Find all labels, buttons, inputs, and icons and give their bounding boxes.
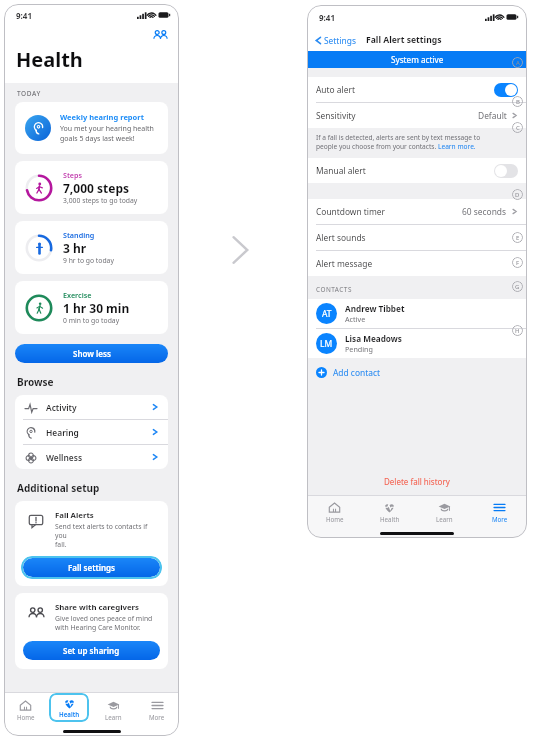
staticText: If a fall is detected, alerts are sent b… bbox=[316, 133, 481, 142]
staticText: TODAY bbox=[17, 89, 41, 98]
button[interactable]: More bbox=[135, 693, 179, 726]
staticText: Health bbox=[380, 515, 400, 523]
button[interactable]: Alert sounds bbox=[307, 225, 527, 250]
staticText: Auto alert bbox=[316, 84, 355, 95]
staticText: Share with caregivers bbox=[55, 602, 139, 613]
button[interactable]: Standing bbox=[15, 221, 168, 274]
button[interactable]: Fall settings bbox=[23, 558, 160, 577]
staticText: G bbox=[515, 283, 520, 291]
button[interactable]: System active bbox=[307, 51, 527, 68]
button[interactable]: Health bbox=[362, 496, 417, 528]
staticText: Learn bbox=[436, 515, 453, 523]
staticText: Alert sounds bbox=[316, 232, 366, 243]
button[interactable]: Steps bbox=[15, 161, 168, 214]
button[interactable]: Activity bbox=[15, 395, 168, 419]
button[interactable]: Countdown timer bbox=[307, 199, 527, 224]
staticText: Default bbox=[478, 110, 507, 121]
staticText: E bbox=[516, 234, 520, 242]
staticText: H bbox=[515, 327, 520, 335]
staticText: 7,000 steps bbox=[63, 180, 130, 196]
button[interactable]: Sensitivity bbox=[307, 103, 527, 128]
button[interactable]: On bbox=[494, 83, 518, 97]
staticText: 60 seconds bbox=[462, 206, 507, 217]
staticText: Give loved ones peace of mind with Heari… bbox=[55, 614, 153, 632]
staticText: Alert message bbox=[316, 258, 373, 269]
button[interactable]: Show less bbox=[15, 344, 168, 363]
staticText: 9:41 bbox=[319, 12, 335, 23]
staticText: LM bbox=[320, 338, 333, 350]
staticText: More bbox=[149, 713, 165, 721]
staticText: Weekly hearing report bbox=[60, 112, 144, 122]
staticText: Andrew Tibbet bbox=[345, 303, 405, 314]
staticText: Manual alert bbox=[316, 165, 366, 176]
staticText: Learn bbox=[105, 713, 122, 721]
button[interactable]: Home bbox=[307, 496, 362, 528]
button[interactable]: Learn bbox=[91, 693, 135, 726]
staticText: Settings bbox=[324, 35, 356, 46]
staticText: Lisa Meadows bbox=[345, 333, 402, 344]
staticText: Sensitivity bbox=[316, 110, 356, 121]
staticText: Browse bbox=[17, 375, 54, 389]
staticText: Pending bbox=[345, 344, 373, 354]
button[interactable]: Learn bbox=[417, 496, 472, 528]
staticText: Send text alerts to contacts if you fall… bbox=[55, 522, 158, 549]
button[interactable]: Set up sharing bbox=[23, 641, 160, 660]
button[interactable]: Settings bbox=[314, 35, 356, 46]
staticText: Exercise bbox=[63, 290, 92, 300]
staticText: 3 hr bbox=[63, 240, 87, 256]
button[interactable]: Add contact bbox=[307, 358, 527, 378]
staticText: 0 min to go today bbox=[63, 316, 120, 325]
staticText: Home bbox=[17, 713, 35, 721]
staticText: 3,000 steps to go today bbox=[63, 196, 138, 205]
staticText: System active bbox=[391, 54, 444, 65]
staticText: Active bbox=[345, 314, 366, 324]
staticText: Activity bbox=[46, 402, 77, 413]
staticText: Fall Alert settings bbox=[366, 34, 442, 46]
button[interactable]: Sharing bbox=[151, 26, 169, 44]
staticText: Add contact bbox=[333, 367, 380, 378]
button[interactable]: Home bbox=[4, 693, 47, 726]
button[interactable]: Exercise bbox=[15, 281, 168, 334]
staticText: Show less bbox=[73, 348, 111, 359]
button[interactable]: More bbox=[472, 496, 527, 528]
button[interactable]: Health bbox=[49, 693, 89, 722]
button[interactable]: LM bbox=[307, 329, 527, 358]
staticText: Hearing bbox=[46, 427, 79, 438]
staticText: Health bbox=[16, 46, 83, 73]
button[interactable]: Auto alert bbox=[307, 77, 527, 102]
button[interactable]: Wellness bbox=[15, 445, 168, 469]
staticText: Wellness bbox=[46, 452, 83, 463]
staticText: Fall Alerts bbox=[55, 510, 94, 521]
staticText: Set up sharing bbox=[63, 645, 120, 656]
staticText: C bbox=[516, 124, 520, 132]
button[interactable]: Hearing bbox=[15, 420, 168, 444]
staticText: F bbox=[516, 259, 520, 267]
button[interactable]: Off bbox=[494, 164, 518, 178]
staticText: Delete fall history bbox=[384, 476, 450, 487]
staticText: Standing bbox=[63, 230, 95, 240]
staticText: 9 hr to go today bbox=[63, 256, 114, 265]
staticText: D bbox=[515, 191, 520, 199]
button[interactable]: Manual alert bbox=[307, 158, 527, 183]
staticText: A bbox=[516, 59, 520, 67]
staticText: More bbox=[492, 515, 508, 523]
staticText: Home bbox=[326, 515, 344, 523]
staticText: B bbox=[516, 98, 520, 106]
staticText: 9:41 bbox=[16, 10, 32, 21]
button[interactable]: AT bbox=[307, 299, 527, 328]
staticText: CONTACTS bbox=[316, 285, 352, 294]
button[interactable]: Delete fall history bbox=[307, 476, 527, 495]
staticText: Fall settings bbox=[68, 562, 116, 573]
staticText: AT bbox=[322, 308, 332, 320]
staticText: Countdown timer bbox=[316, 206, 386, 217]
staticText: 1 hr 30 min bbox=[63, 300, 130, 316]
button[interactable]: Learn more. bbox=[438, 142, 476, 151]
staticText: You met your hearing health goals 5 days… bbox=[60, 124, 154, 144]
staticText: Steps bbox=[63, 170, 83, 180]
button[interactable]: Alert message bbox=[307, 251, 527, 276]
staticText: people you choose from your contacts. bbox=[316, 142, 438, 151]
staticText: Health bbox=[59, 710, 80, 718]
staticText: Additional setup bbox=[17, 481, 100, 495]
